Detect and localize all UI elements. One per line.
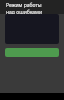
staticText: над ошибками <box>6 9 42 14</box>
staticText: Режим работы <box>6 2 42 9</box>
